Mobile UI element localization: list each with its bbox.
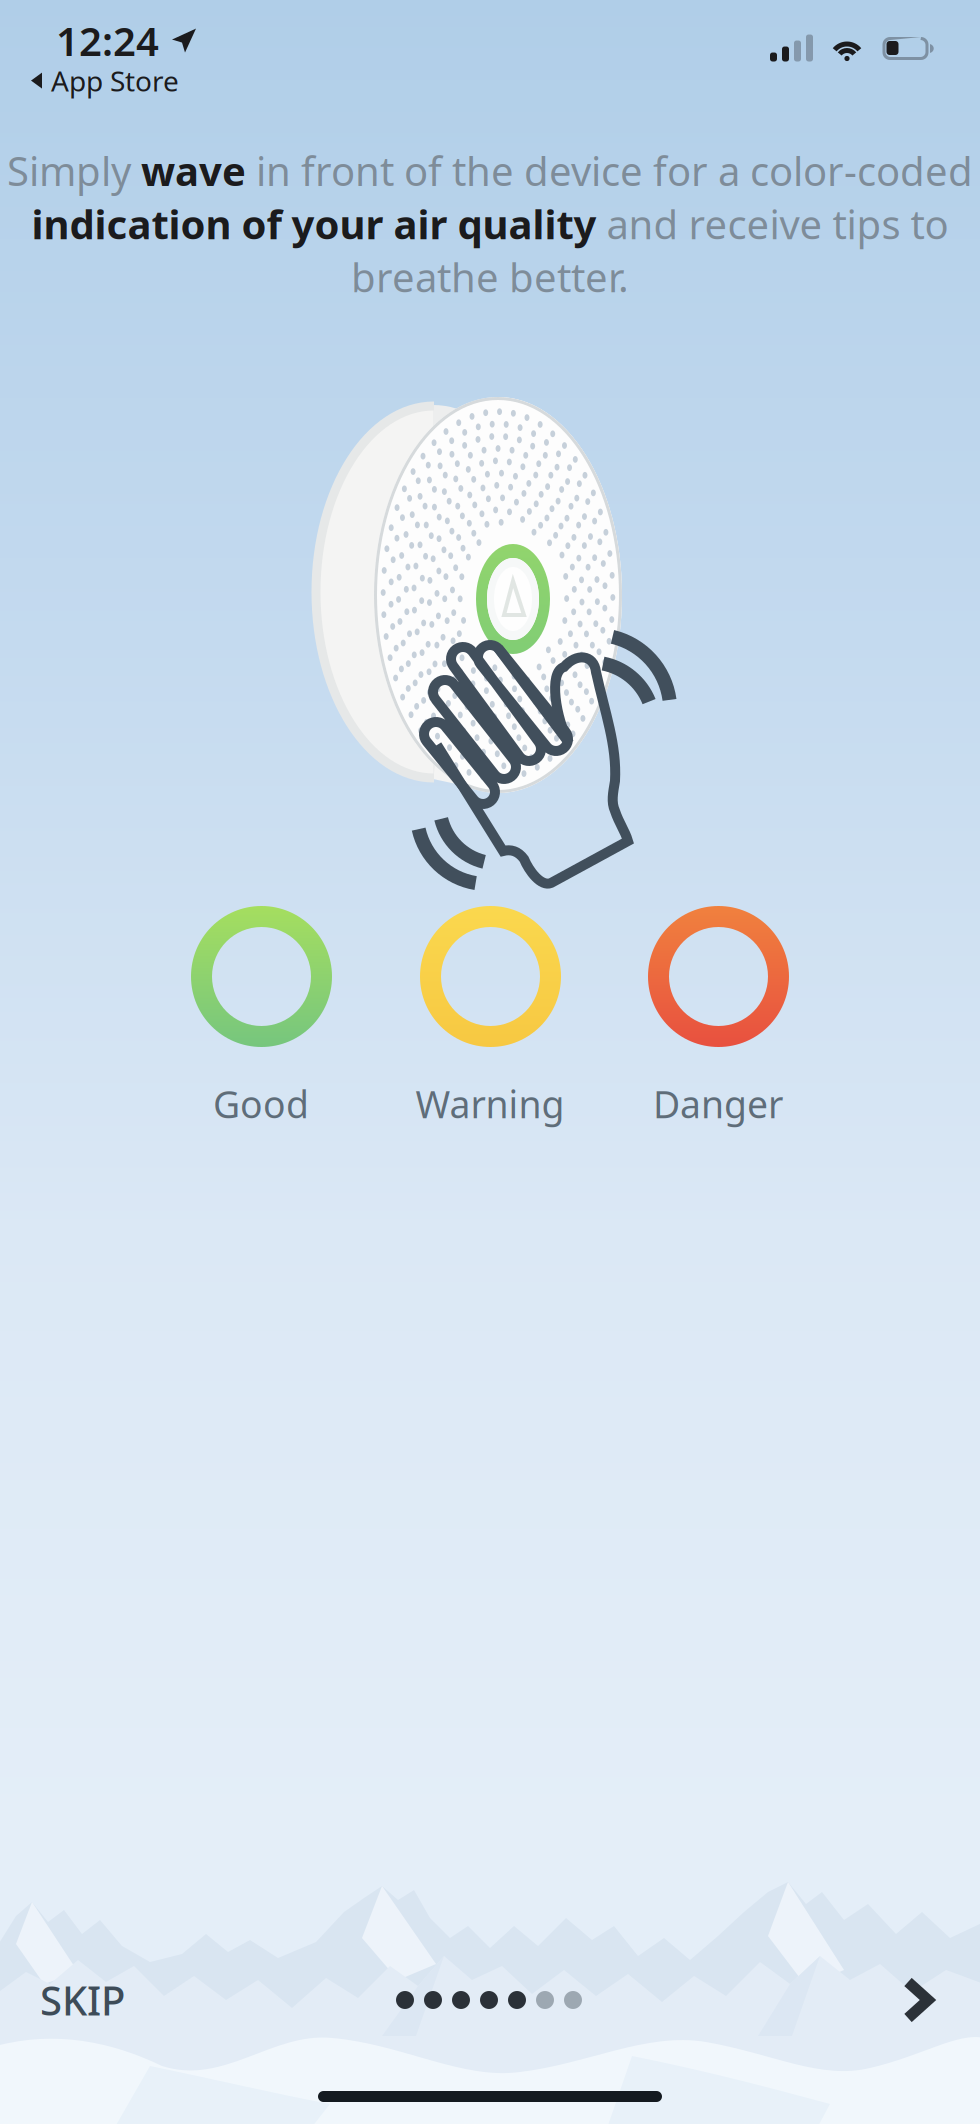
staticText: breathe better. <box>351 250 629 303</box>
staticText: Good <box>213 1079 309 1129</box>
staticText: App Store <box>51 62 179 99</box>
staticText: and receive tips to <box>596 197 948 250</box>
button[interactable]: Next <box>866 1952 976 2048</box>
staticText: SKIP <box>40 1973 125 2026</box>
staticText: Warning <box>415 1079 564 1129</box>
staticText: 12:24 <box>56 14 159 67</box>
staticText: in front of the device for a color-coded <box>246 144 973 197</box>
staticText: wave <box>141 144 246 197</box>
button[interactable]: SKIP <box>0 1952 180 2048</box>
staticText: Danger <box>653 1079 783 1129</box>
staticText: indication of your air quality <box>31 197 596 250</box>
staticText: Simply <box>7 144 141 197</box>
